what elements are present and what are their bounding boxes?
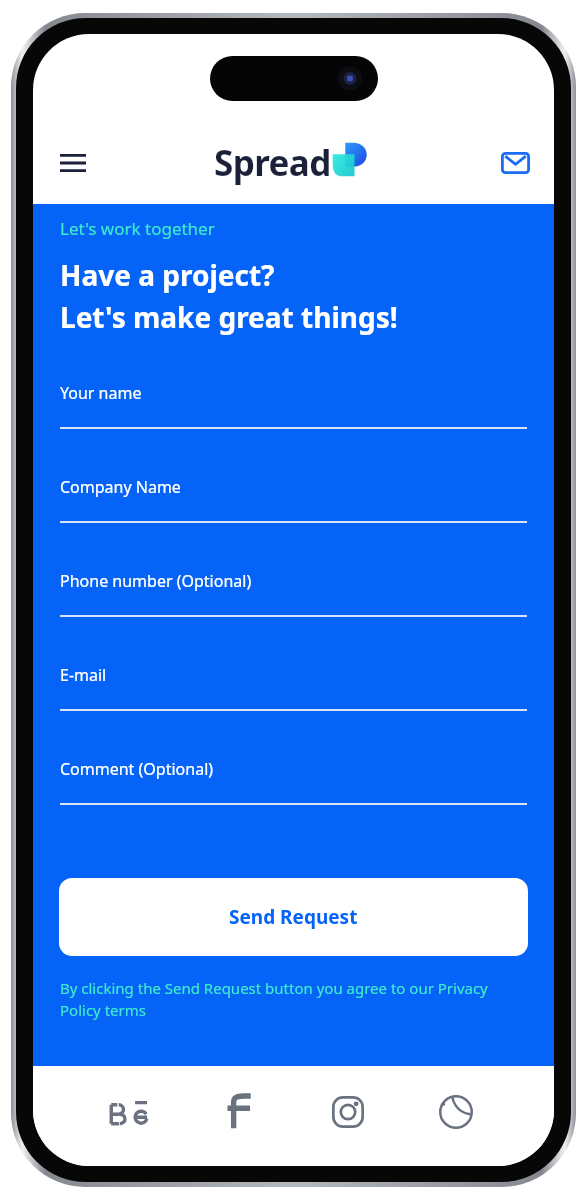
staticText: Your name bbox=[60, 382, 142, 404]
staticText: Company Name bbox=[60, 476, 181, 498]
button[interactable]: Comment (Optional) bbox=[33, 758, 554, 852]
button[interactable]: Contact by email bbox=[493, 141, 537, 185]
staticText: E-mail bbox=[60, 664, 107, 686]
staticText: Phone number (Optional) bbox=[60, 570, 252, 592]
button[interactable]: Menu bbox=[51, 141, 95, 185]
button[interactable]: Company Name bbox=[33, 476, 554, 570]
button[interactable]: Instagram bbox=[324, 1088, 372, 1136]
button[interactable]: E-mail bbox=[33, 664, 554, 758]
staticText: Spread bbox=[214, 139, 331, 187]
button[interactable]: Your name bbox=[33, 382, 554, 476]
staticText: Send Request bbox=[229, 904, 358, 930]
staticText: By clicking the Send Request button you … bbox=[60, 978, 532, 1021]
staticText: Comment (Optional) bbox=[60, 758, 214, 780]
staticText: Have a project? bbox=[60, 256, 275, 294]
button[interactable]: Dribbble bbox=[432, 1088, 480, 1136]
button[interactable]: Phone number (Optional) bbox=[33, 570, 554, 664]
button[interactable]: Send Request bbox=[59, 878, 528, 956]
button[interactable]: Facebook bbox=[215, 1088, 263, 1136]
button[interactable]: Behance bbox=[107, 1088, 155, 1136]
button[interactable]: Spread bbox=[214, 139, 373, 187]
staticText: Let's make great things! bbox=[60, 298, 398, 336]
staticText: Let's work together bbox=[60, 217, 215, 240]
